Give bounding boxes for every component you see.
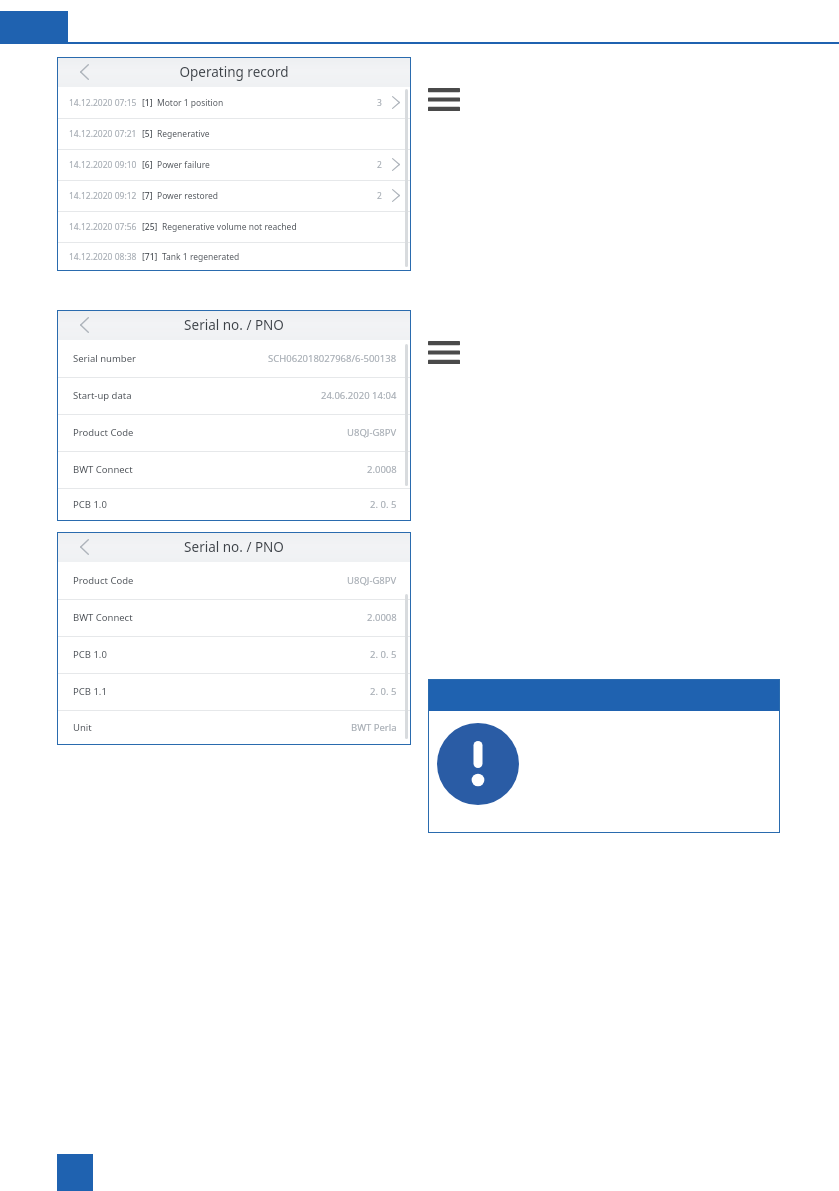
button[interactable]: Unit [57, 710, 411, 745]
button[interactable]: 14.12.2020 07:56 [57, 211, 411, 242]
staticText: Serial no. / PNO [184, 538, 284, 556]
button[interactable]: Back [71, 534, 97, 560]
staticText: 2.0008 [367, 463, 397, 476]
staticText: 2.0008 [367, 611, 397, 624]
button[interactable]: 14.12.2020 07:21 [57, 118, 411, 149]
staticText: Serial no. / PNO [184, 316, 284, 334]
button[interactable]: Product Code [57, 414, 411, 451]
button[interactable]: Product Code [57, 562, 411, 599]
staticText: PCB 1.0 [73, 498, 107, 511]
staticText: 14.12.2020 09:10 [69, 159, 137, 171]
staticText: Motor 1 position [157, 97, 224, 109]
staticText: 14.12.2020 07:21 [69, 128, 137, 140]
staticText: U8QJ-G8PV [347, 426, 397, 439]
staticText: [7] [142, 190, 153, 202]
staticText: Serial number [73, 352, 136, 365]
staticText: Tank 1 regenerated [162, 251, 240, 263]
staticText: [1] [142, 97, 153, 109]
staticText: BWT Connect [73, 611, 133, 624]
staticText: 2. 0. 5 [370, 498, 397, 511]
button[interactable]: 14.12.2020 09:10 [57, 149, 411, 180]
staticText: 2. 0. 5 [370, 685, 397, 698]
button[interactable]: PCB 1.0 [57, 488, 411, 521]
staticText: Product Code [73, 426, 134, 439]
staticText: [71] [142, 251, 158, 263]
button[interactable]: Back [71, 312, 97, 338]
button[interactable]: Serial number [57, 340, 411, 377]
staticText: 2 [377, 190, 382, 202]
staticText: Power restored [157, 190, 219, 202]
staticText: PCB 1.0 [73, 648, 107, 661]
button[interactable]: Menu [428, 86, 464, 112]
button[interactable]: 14.12.2020 07:15 [57, 87, 411, 118]
staticText: [5] [142, 128, 153, 140]
staticText: BWT Connect [73, 463, 133, 476]
button[interactable]: PCB 1.1 [57, 673, 411, 710]
staticText: U8QJ-G8PV [347, 574, 397, 587]
staticText: [25] [142, 221, 158, 233]
button[interactable]: Menu [428, 339, 464, 365]
staticText: 14.12.2020 09:12 [69, 190, 137, 202]
staticText: 24.06.2020 14:04 [321, 389, 397, 402]
staticText: Operating record [179, 63, 289, 81]
staticText: [6] [142, 159, 153, 171]
button[interactable]: 14.12.2020 09:12 [57, 180, 411, 211]
staticText: SCH062018027968/6-500138 [268, 352, 397, 365]
staticText: BWT Perla [351, 721, 397, 734]
staticText: Unit [73, 721, 92, 734]
staticText: Regenerative [157, 128, 210, 140]
staticText: 14.12.2020 08:38 [69, 251, 137, 263]
staticText: 14.12.2020 07:56 [69, 221, 137, 233]
staticText: Regenerative volume not reached [162, 221, 297, 233]
staticText: Power failure [157, 159, 210, 171]
button[interactable]: 14.12.2020 08:38 [57, 242, 411, 271]
button[interactable]: BWT Connect [57, 599, 411, 636]
staticText: PCB 1.1 [73, 685, 107, 698]
button[interactable]: PCB 1.0 [57, 636, 411, 673]
button[interactable]: Back [71, 59, 97, 85]
staticText: 2 [377, 159, 382, 171]
staticText: Start-up data [73, 389, 132, 402]
staticText: 3 [377, 97, 382, 109]
staticText: Product Code [73, 574, 134, 587]
staticText: 14.12.2020 07:15 [69, 97, 137, 109]
button[interactable]: Start-up data [57, 377, 411, 414]
staticText: 2. 0. 5 [370, 648, 397, 661]
button[interactable]: BWT Connect [57, 451, 411, 488]
